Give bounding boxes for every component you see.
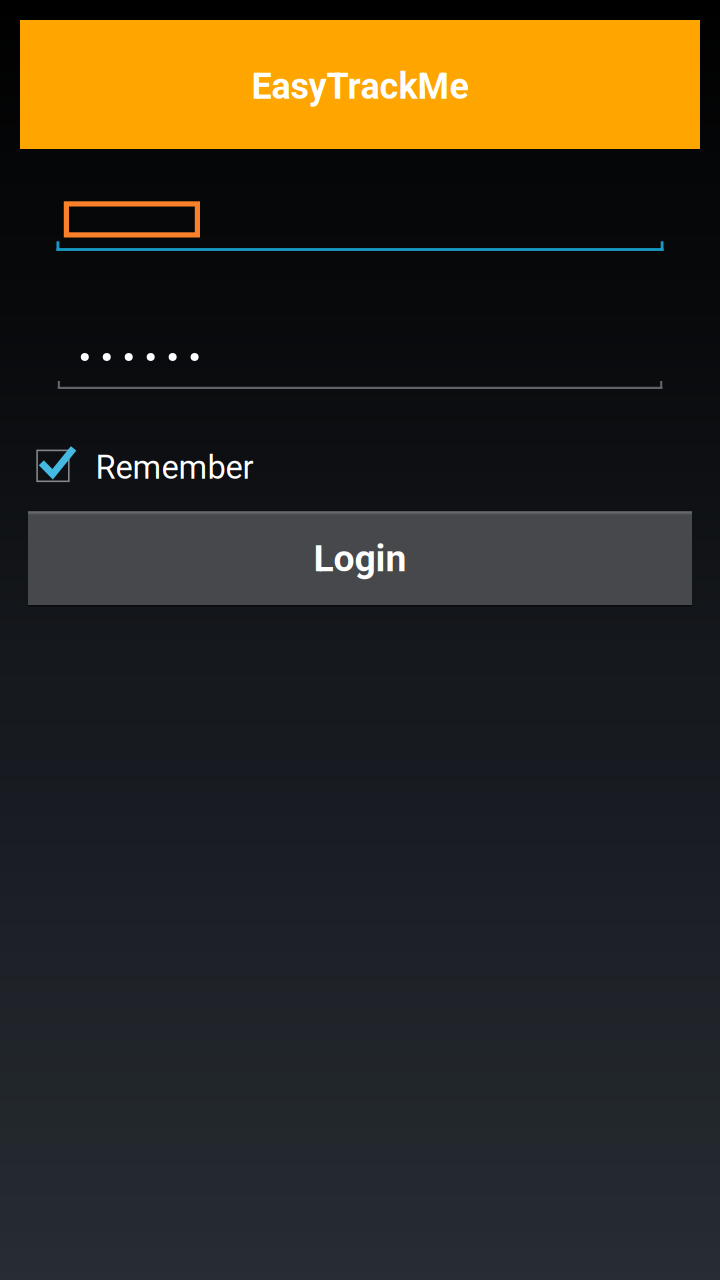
button[interactable]: Password <box>58 353 663 389</box>
staticText: EasyTrackMe <box>251 65 468 108</box>
button[interactable]: Login <box>28 511 692 605</box>
staticText: Login <box>313 536 406 580</box>
button[interactable]: Username <box>56 201 663 252</box>
button[interactable]: Remember <box>36 441 366 489</box>
staticText: Remember <box>95 448 253 487</box>
